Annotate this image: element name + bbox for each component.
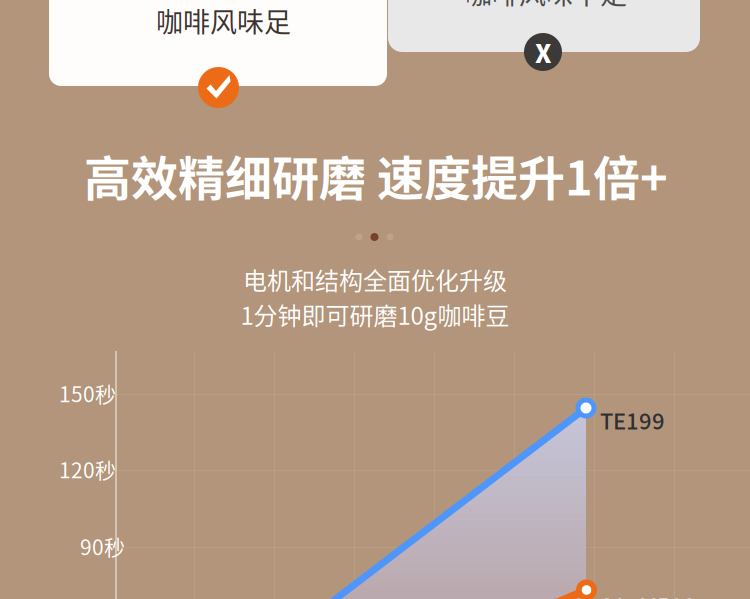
staticText: 咖啡风味足 bbox=[156, 1, 291, 40]
staticText: 1分钟即可研磨10g咖啡豆 bbox=[240, 297, 509, 332]
staticText: 电机和结构全面优化升级 bbox=[243, 262, 507, 297]
staticText: 150秒 bbox=[59, 378, 116, 408]
staticText: 咖啡风味不足 bbox=[465, 0, 627, 12]
button[interactable]: 咖啡风味不足 bbox=[388, 0, 700, 52]
staticText: X bbox=[535, 34, 551, 70]
staticText: 高效精细研磨 速度提升1倍+ bbox=[84, 141, 668, 209]
staticText: S1+M510 bbox=[600, 589, 696, 599]
button[interactable]: 咖啡风味足 bbox=[49, 0, 387, 86]
staticText: 120秒 bbox=[59, 454, 116, 484]
staticText: 90秒 bbox=[80, 531, 125, 561]
staticText: TE199 bbox=[600, 404, 665, 436]
